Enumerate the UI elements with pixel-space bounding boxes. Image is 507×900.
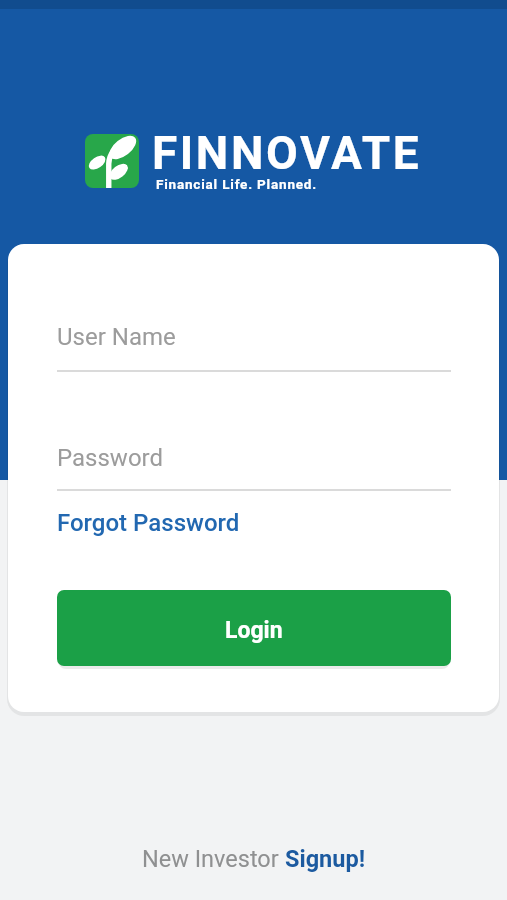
- staticText: Login: [225, 617, 283, 644]
- staticText: FINNOVATE: [152, 126, 422, 180]
- staticText: User Name: [57, 323, 176, 351]
- button[interactable]: User Name: [57, 314, 451, 372]
- button[interactable]: Forgot Password: [57, 509, 240, 537]
- staticText: Password: [57, 444, 164, 472]
- button[interactable]: Password: [57, 433, 451, 491]
- staticText: Forgot Password: [57, 509, 240, 537]
- staticText: New Investor: [142, 845, 285, 873]
- staticText: Financial Life. Planned.: [156, 176, 317, 192]
- button[interactable]: New Investor: [142, 845, 366, 873]
- staticText: Signup!: [285, 845, 366, 873]
- button[interactable]: Login: [57, 590, 451, 666]
